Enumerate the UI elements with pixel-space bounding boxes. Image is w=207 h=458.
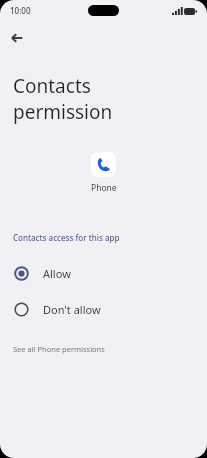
staticText: 10:00	[10, 5, 31, 16]
staticText: Allow	[43, 266, 71, 281]
staticText: Contacts	[13, 73, 91, 99]
button[interactable]: See all Phone permissions	[0, 339, 207, 359]
staticText: See all Phone permissions	[13, 344, 105, 354]
staticText: Phone	[91, 182, 117, 194]
staticText: Contacts access for this app	[13, 232, 120, 243]
button[interactable]: Back	[5, 26, 29, 50]
staticText: Don't allow	[43, 302, 101, 317]
staticText: permission	[13, 99, 113, 125]
button[interactable]: Don't allow	[0, 295, 207, 323]
button[interactable]: Allow	[0, 259, 207, 287]
